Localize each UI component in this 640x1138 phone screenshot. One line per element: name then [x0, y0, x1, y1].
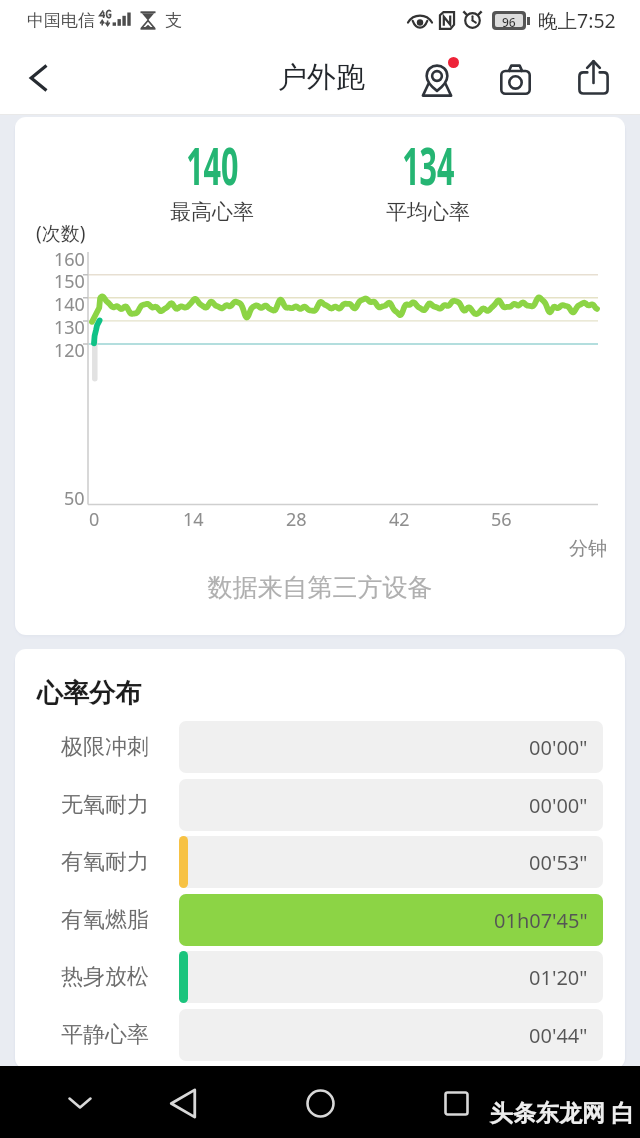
button[interactable]: Back	[159, 1079, 207, 1127]
staticText: 户外跑	[278, 59, 365, 96]
staticText: 有氧耐力	[61, 848, 149, 876]
staticText: 平静心率	[61, 1021, 149, 1049]
staticText: 134	[402, 131, 455, 200]
staticText: 数据来自第三方设备	[15, 572, 625, 603]
staticText: 00'00"	[529, 734, 588, 761]
staticText: 无氧耐力	[61, 791, 149, 819]
staticText: 热身放松	[61, 963, 149, 991]
staticText: 头条东龙网 白	[490, 1096, 634, 1127]
staticText: 42	[389, 507, 410, 532]
button[interactable]: Camera	[491, 56, 540, 105]
staticText: 56	[491, 507, 512, 532]
staticText: 平均心率	[386, 199, 470, 225]
staticText: (次数)	[36, 220, 86, 246]
staticText: 分钟	[569, 537, 607, 561]
staticText: 28	[286, 507, 307, 532]
button[interactable]: Recent apps	[432, 1079, 480, 1127]
staticText: 140	[186, 131, 239, 200]
staticText: 14	[183, 507, 204, 532]
staticText: 00'44"	[529, 1022, 588, 1049]
staticText: 50	[64, 486, 85, 511]
staticText: 中国电信	[27, 10, 95, 31]
button[interactable]: 有氧耐力	[15, 836, 625, 888]
button[interactable]: Share	[569, 40, 618, 89]
staticText: 心率分布	[37, 677, 141, 710]
staticText: 晚上7:52	[538, 7, 616, 34]
staticText: 96	[502, 14, 516, 27]
button[interactable]: 热身放松	[15, 951, 625, 1003]
staticText: 140	[54, 292, 85, 317]
staticText: 极限冲刺	[61, 733, 149, 761]
button[interactable]: Hide keyboard	[56, 1079, 104, 1127]
staticText: 01'20"	[529, 964, 588, 991]
button[interactable]: Back	[15, 54, 63, 102]
staticText: 支	[165, 10, 182, 31]
staticText: 00'00"	[529, 792, 588, 819]
staticText: 150	[54, 269, 85, 294]
staticText: 0	[89, 507, 100, 532]
button[interactable]: Map	[412, 54, 462, 104]
button[interactable]: 有氧燃脂	[15, 894, 625, 946]
staticText: 01h07'45"	[494, 907, 588, 934]
staticText: 最高心率	[170, 199, 254, 225]
button[interactable]: 平静心率	[15, 1009, 625, 1061]
staticText: 120	[54, 338, 85, 363]
button[interactable]: 极限冲刺	[15, 721, 625, 773]
staticText: 有氧燃脂	[61, 906, 149, 934]
button[interactable]: 无氧耐力	[15, 779, 625, 831]
staticText: 00'53"	[529, 849, 588, 876]
staticText: 130	[54, 315, 85, 340]
staticText: 160	[54, 247, 85, 272]
button[interactable]: Home	[296, 1079, 344, 1127]
